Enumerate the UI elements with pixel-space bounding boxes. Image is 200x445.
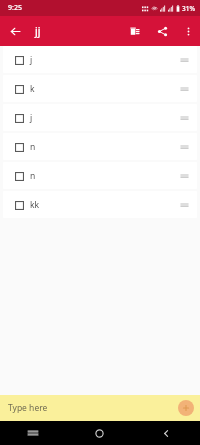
button[interactable]: Check kk (3, 191, 197, 218)
button[interactable]: Reorder j (174, 108, 194, 128)
button[interactable]: Check j (12, 111, 26, 125)
staticText: k (30, 83, 35, 95)
button[interactable]: Share (148, 17, 176, 45)
button[interactable]: Delete (120, 17, 148, 45)
button[interactable]: Add item (178, 400, 194, 416)
staticText: n (30, 170, 36, 182)
button[interactable]: Reorder kk (174, 195, 194, 215)
button[interactable]: Check kk (12, 198, 26, 212)
button[interactable]: Reorder n (174, 166, 194, 186)
staticText: 31% (182, 4, 195, 13)
button[interactable]: Check k (3, 75, 197, 102)
button[interactable]: Check j (12, 53, 26, 67)
button[interactable]: Check j (3, 46, 197, 73)
button[interactable]: Check n (3, 162, 197, 189)
staticText: n (30, 141, 36, 153)
staticText: 9:25 (8, 3, 22, 13)
button[interactable]: Home (66, 421, 133, 445)
button[interactable]: Back (133, 421, 200, 445)
button[interactable]: Reorder j (174, 50, 194, 70)
button[interactable]: Check n (12, 169, 26, 183)
button[interactable]: Check j (3, 104, 197, 131)
button[interactable]: Back (0, 16, 30, 46)
staticText: jj (35, 24, 41, 38)
staticText: j (30, 112, 33, 124)
button[interactable]: Check k (12, 82, 26, 96)
button[interactable]: Check n (3, 133, 197, 160)
button[interactable]: Recent apps (0, 421, 66, 445)
staticText: j (30, 54, 33, 66)
button[interactable]: More options (176, 19, 200, 43)
staticText: Type here (8, 402, 48, 414)
button[interactable]: Type here (0, 395, 200, 421)
button[interactable]: Check n (12, 140, 26, 154)
staticText: kk (30, 199, 40, 211)
button[interactable]: Reorder n (174, 137, 194, 157)
button[interactable]: Reorder k (174, 79, 194, 99)
